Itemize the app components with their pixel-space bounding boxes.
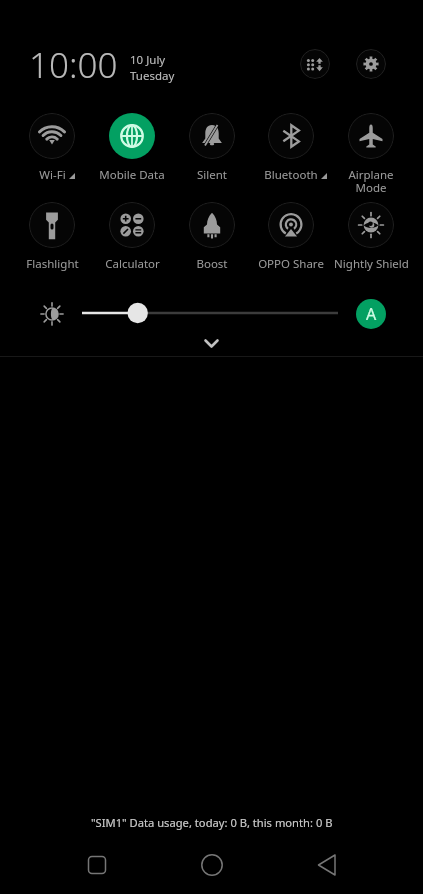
- button[interactable]: OPPO Share: [251, 202, 331, 272]
- button[interactable]: Data usage: [300, 49, 330, 79]
- staticText: Nightly Shield: [334, 256, 409, 272]
- button[interactable]: Calculator: [92, 202, 172, 272]
- staticText: Mobile Data: [99, 167, 165, 183]
- staticText: Silent: [197, 167, 227, 183]
- button[interactable]: Airplane Mode: [331, 113, 411, 196]
- staticText: Wi-Fi: [39, 167, 66, 183]
- button[interactable]: Back: [303, 847, 351, 883]
- staticText: Flashlight: [26, 256, 79, 272]
- button[interactable]: Boost: [172, 202, 252, 272]
- button[interactable]: Expand quick settings: [191, 332, 231, 354]
- staticText: 10 July: [130, 52, 166, 68]
- button[interactable]: Brightness slider: [76, 300, 344, 326]
- button[interactable]: Wi-Fi: [12, 113, 92, 183]
- button[interactable]: Auto brightness: [356, 299, 386, 329]
- button[interactable]: Mobile Data: [92, 113, 172, 183]
- staticText: Calculator: [105, 256, 160, 272]
- staticText: OPPO Share: [258, 256, 324, 272]
- button[interactable]: Silent: [172, 113, 252, 183]
- staticText: Bluetooth: [264, 167, 318, 183]
- button[interactable]: Settings: [356, 49, 386, 79]
- other: Brightness: [39, 301, 65, 327]
- staticText: "SIM1" Data usage, today: 0 B, this mont…: [91, 815, 333, 830]
- button[interactable]: Nightly Shield: [331, 202, 411, 272]
- button[interactable]: Home: [188, 847, 236, 883]
- button[interactable]: Flashlight: [12, 202, 92, 272]
- button[interactable]: Recents: [73, 847, 121, 883]
- staticText: 10:00: [29, 41, 118, 89]
- staticText: A: [366, 303, 377, 325]
- staticText: Boost: [196, 256, 228, 272]
- button[interactable]: Bluetooth: [251, 113, 331, 183]
- staticText: Tuesday: [130, 68, 175, 84]
- staticText: Airplane Mode: [348, 167, 394, 196]
